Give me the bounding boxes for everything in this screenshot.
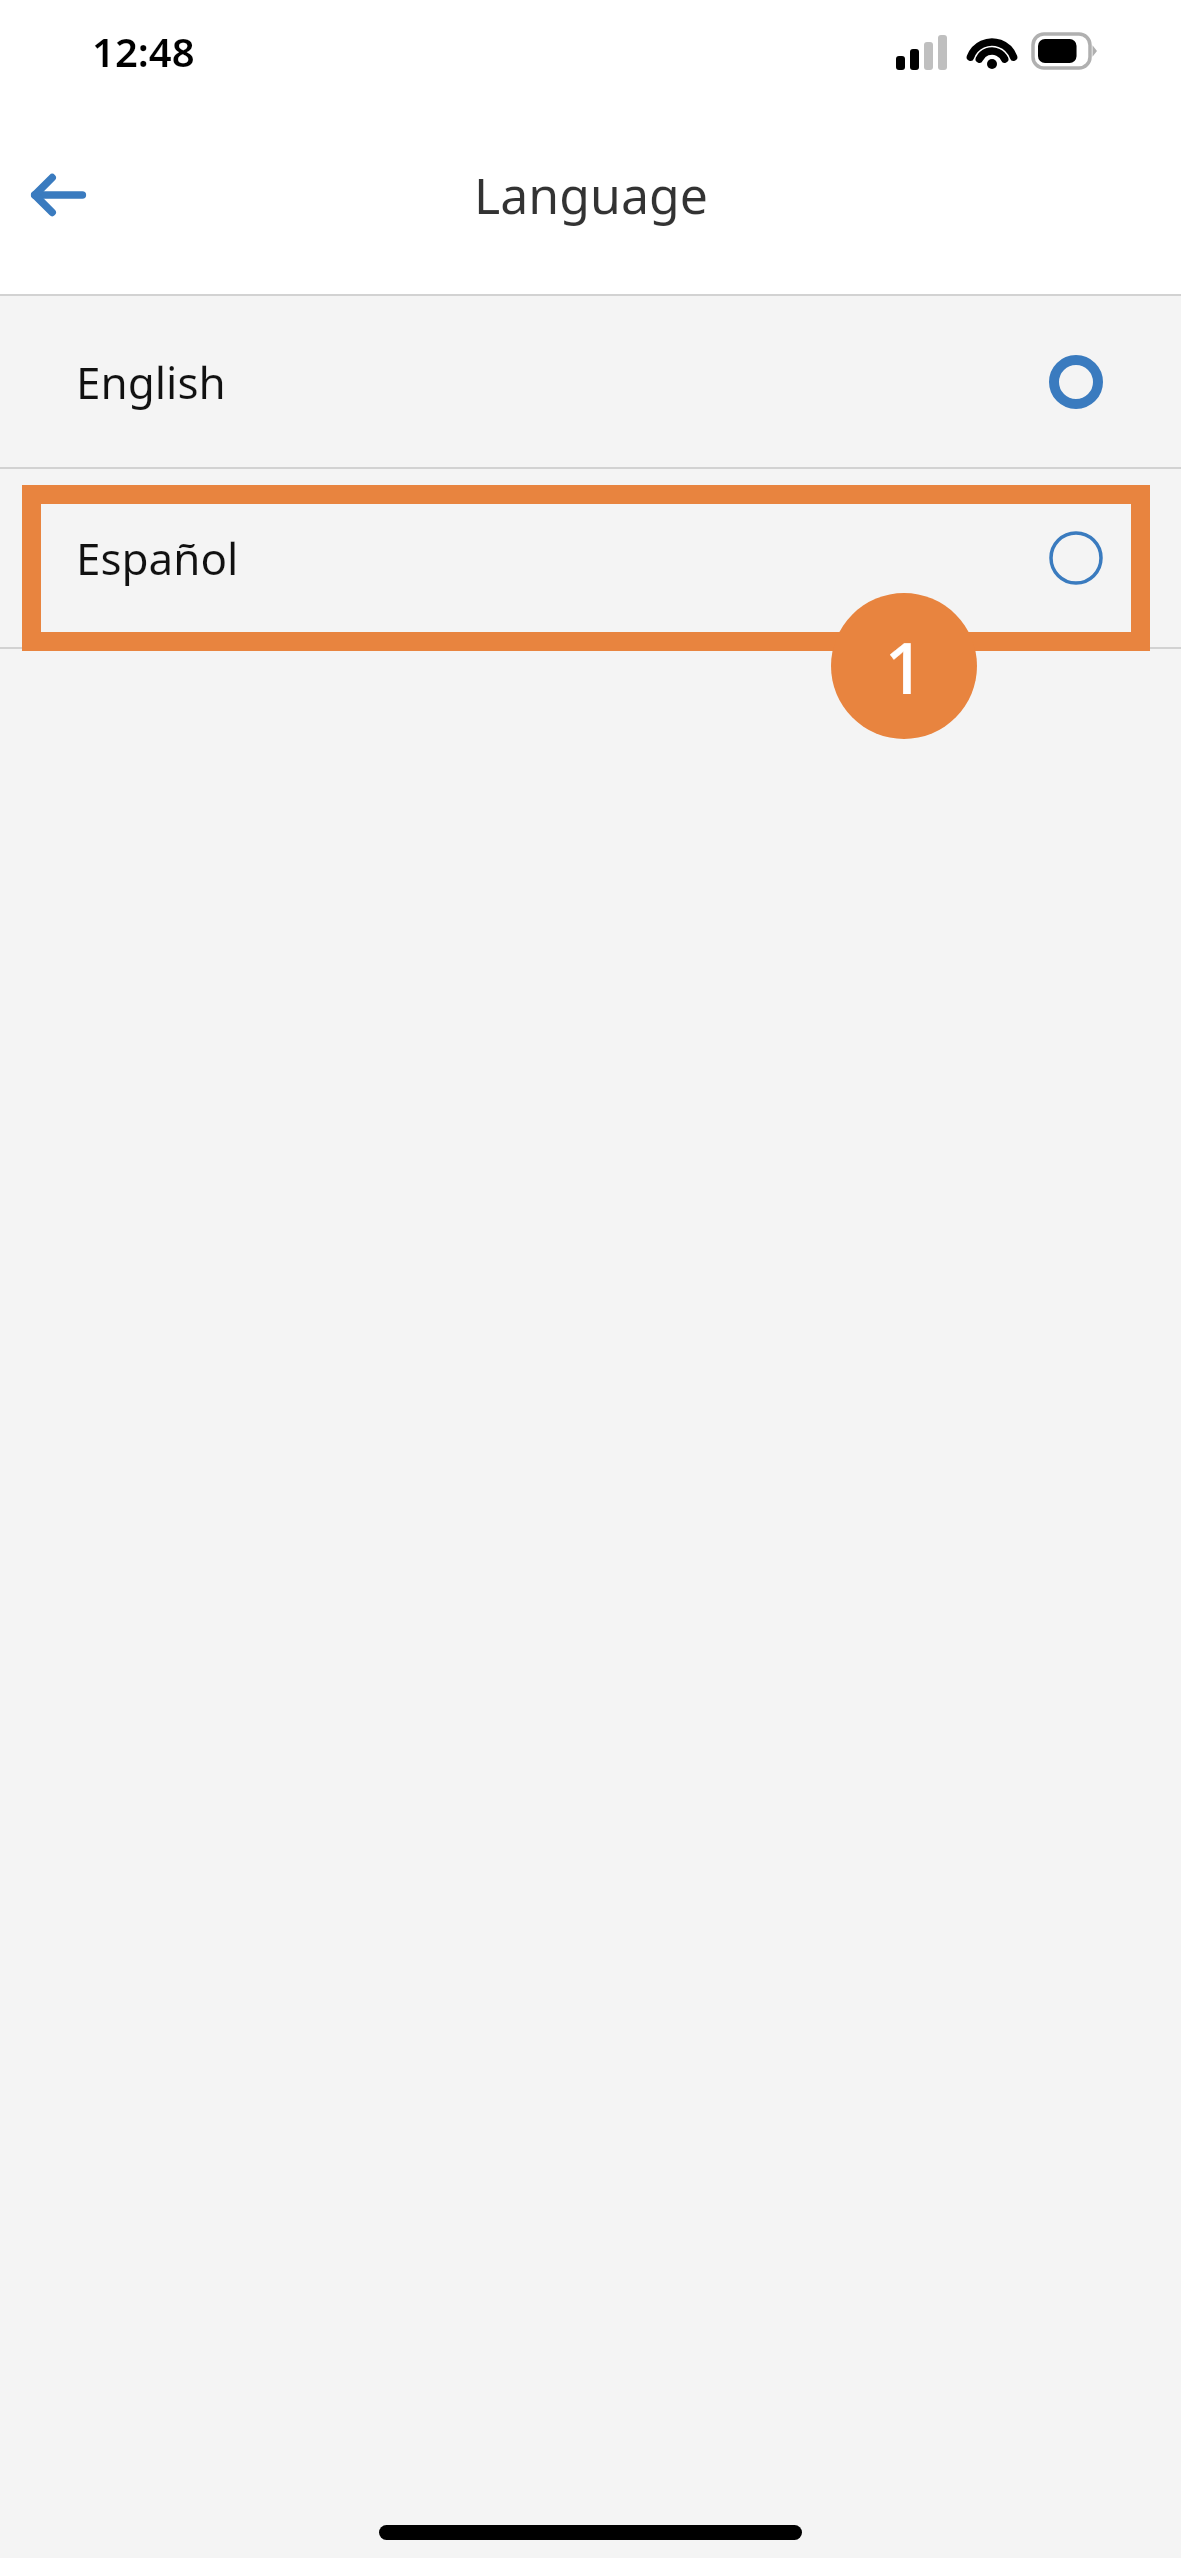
- button[interactable]: Español: [0, 469, 1181, 647]
- staticText: English: [76, 352, 226, 412]
- staticText: 1: [884, 619, 925, 714]
- staticText: Español: [76, 528, 239, 588]
- button[interactable]: English: [0, 296, 1181, 467]
- staticText: Language: [474, 161, 708, 229]
- button[interactable]: Back: [8, 145, 108, 245]
- staticText: 12:48: [92, 24, 195, 78]
